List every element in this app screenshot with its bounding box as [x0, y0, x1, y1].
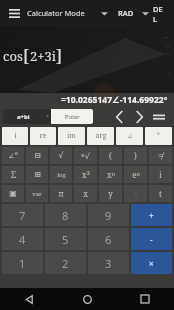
button[interactable]: ⊟ — [26, 147, 48, 164]
button[interactable]: Menu — [5, 4, 23, 22]
button[interactable]: Polar — [51, 109, 93, 124]
staticText: re — [39, 131, 47, 141]
button[interactable]: ∠ — [116, 127, 143, 145]
staticText: a+bi — [17, 113, 30, 121]
staticText: √ — [58, 151, 64, 160]
button[interactable]: 5 — [45, 228, 86, 250]
button[interactable]: Previous — [109, 107, 129, 127]
button[interactable]: ⊞ — [26, 166, 48, 183]
button[interactable]: x² — [74, 166, 97, 183]
button[interactable]: Σ — [2, 166, 24, 183]
staticText: Calculator Mode — [27, 8, 85, 18]
button[interactable]: var — [26, 185, 48, 202]
staticText: 7 — [19, 208, 26, 223]
staticText: 16 — [166, 62, 171, 67]
staticText: - — [150, 234, 153, 245]
button[interactable]: arg — [87, 127, 114, 145]
staticText: + — [149, 210, 154, 221]
staticText: 5 — [62, 232, 69, 247]
staticText: ≠ — [158, 150, 163, 161]
button[interactable]: eⁿ — [124, 166, 147, 183]
staticText: Σ — [11, 169, 16, 180]
staticText: 10 — [166, 89, 171, 93]
button[interactable]: Recents — [116, 288, 174, 310]
button[interactable]: Equals — [149, 107, 169, 127]
staticText: ··· — [164, 34, 169, 41]
staticText: im — [67, 131, 76, 141]
staticText: RAD — [118, 8, 134, 18]
button[interactable]: x — [74, 185, 97, 202]
button[interactable]: ∠° — [2, 147, 24, 164]
button[interactable]: × — [131, 252, 172, 274]
staticText: Polar — [65, 113, 80, 121]
button[interactable]: Calculator Mode — [27, 4, 108, 22]
button[interactable]: + — [131, 204, 172, 226]
button[interactable]: ▣ — [2, 185, 24, 202]
button[interactable]: Next — [129, 107, 149, 127]
button[interactable]: 8 — [45, 204, 86, 226]
button[interactable]: 7 — [2, 204, 43, 226]
staticText: [ — [23, 44, 30, 67]
staticText: i — [159, 169, 162, 180]
staticText: DEL — [153, 4, 165, 22]
button[interactable]: RAD — [118, 4, 149, 22]
button[interactable]: re — [30, 127, 56, 145]
staticText: ▣ — [9, 189, 17, 198]
button[interactable]: a+bi — [3, 109, 43, 124]
button[interactable]: 2 — [45, 252, 86, 274]
staticText: 8 — [62, 208, 69, 223]
staticText: × — [46, 113, 49, 120]
staticText: xⁿ — [107, 169, 115, 180]
staticText: ° — [157, 131, 160, 141]
staticText: i — [14, 131, 17, 141]
staticText: ⁿ√ — [81, 150, 90, 161]
button[interactable]: - — [131, 228, 172, 250]
staticText: ⊞ — [34, 170, 41, 179]
button[interactable]: i — [2, 127, 28, 145]
staticText: 6 — [105, 232, 112, 247]
button[interactable]: ) — [124, 147, 147, 164]
staticText: y — [108, 188, 113, 199]
button[interactable]: 9 — [88, 204, 129, 226]
staticText: × — [149, 258, 154, 269]
button[interactable]: ( — [99, 147, 122, 164]
button[interactable]: 6 — [88, 228, 129, 250]
button[interactable]: Back — [0, 288, 58, 310]
staticText: log — [57, 171, 66, 179]
button[interactable]: DEL — [149, 0, 169, 26]
button[interactable]: ≠ — [149, 147, 172, 164]
button[interactable]: xⁿ — [99, 166, 122, 183]
staticText: ] — [56, 44, 63, 67]
staticText: x — [83, 188, 88, 199]
button[interactable]: 1 — [2, 252, 43, 274]
button[interactable]: Home — [58, 288, 116, 310]
staticText: =10.0265147∠-114.69922° — [61, 94, 168, 106]
button[interactable]: 3 — [88, 252, 129, 274]
button[interactable]: log — [50, 166, 72, 183]
staticText: ⊟ — [34, 151, 41, 160]
staticText: t — [159, 188, 162, 199]
staticText: 2+3i — [30, 47, 56, 65]
staticText: π — [58, 188, 64, 199]
button[interactable]: ° — [145, 127, 172, 145]
button[interactable]: π — [50, 185, 72, 202]
staticText: var — [32, 190, 42, 198]
staticText: 12 — [166, 80, 171, 85]
staticText: cos — [3, 47, 23, 65]
staticText: arg — [95, 131, 107, 141]
button[interactable]: y — [99, 185, 122, 202]
staticText: 1 — [19, 256, 26, 271]
button[interactable]: t — [149, 185, 172, 202]
button[interactable]: im — [58, 127, 85, 145]
staticText: eⁿ — [132, 169, 140, 180]
staticText: ∠° — [8, 150, 18, 161]
button[interactable]: 4 — [2, 228, 43, 250]
button[interactable]: √ — [50, 147, 72, 164]
staticText: 2 — [62, 256, 69, 271]
staticText: 14 — [166, 71, 171, 76]
button[interactable]: ⁿ√ — [74, 147, 97, 164]
staticText: x² — [82, 169, 90, 180]
button[interactable]: i — [149, 166, 172, 183]
staticText: z — [133, 188, 138, 199]
